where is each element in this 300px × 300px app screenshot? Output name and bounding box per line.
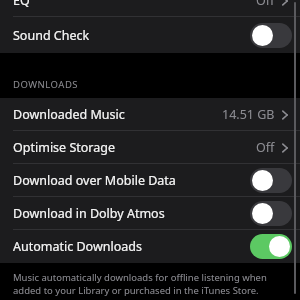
- button[interactable]: Optimise Storage: [0, 131, 300, 164]
- staticText: 14.51 GB: [222, 106, 275, 123]
- staticText: Optimise Storage: [13, 139, 115, 156]
- button[interactable]: Downloaded Music: [0, 98, 300, 131]
- button[interactable]: EQ: [0, 0, 300, 17]
- staticText: DOWNLOADS: [13, 78, 79, 91]
- staticText: Download over Mobile Data: [13, 172, 176, 189]
- staticText: Automatic Downloads: [13, 238, 142, 255]
- staticText: Music automatically downloads for offlin…: [13, 271, 284, 297]
- staticText: Off: [256, 139, 275, 156]
- staticText: Download in Dolby Atmos: [13, 205, 165, 222]
- button[interactable]: Toggle off: [250, 23, 292, 48]
- staticText: Downloaded Music: [13, 106, 125, 123]
- button[interactable]: Toggle on: [250, 234, 292, 259]
- staticText: Off: [256, 0, 275, 9]
- button[interactable]: Toggle off: [250, 168, 292, 193]
- staticText: Sound Check: [13, 27, 90, 44]
- button[interactable]: Download over Mobile Data: [0, 164, 300, 197]
- staticText: EQ: [13, 0, 30, 9]
- button[interactable]: Toggle off: [250, 201, 292, 226]
- button[interactable]: Download in Dolby Atmos: [0, 197, 300, 230]
- button[interactable]: Automatic Downloads: [0, 230, 300, 263]
- button[interactable]: Sound Check: [0, 17, 300, 53]
